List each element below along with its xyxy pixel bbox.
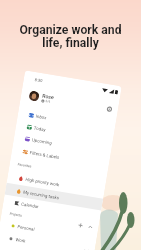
staticText: Favorites — [17, 162, 32, 168]
button[interactable]: High priority work — [7, 170, 105, 198]
button[interactable]: Collapse projects — [86, 222, 95, 232]
button[interactable]: Expand — [82, 246, 91, 250]
staticText: Projects — [9, 212, 23, 218]
staticText: Work — [15, 237, 27, 244]
button[interactable]: Settings — [103, 103, 115, 114]
staticText: Today — [33, 125, 46, 132]
staticText: Rose — [42, 92, 55, 100]
staticText: Calendar — [21, 201, 39, 209]
button[interactable]: Calendar — [3, 195, 101, 222]
staticText: 3/4 — [45, 99, 51, 104]
staticText: Organize work and life, finally — [19, 23, 122, 50]
button[interactable]: Inbox — [17, 107, 116, 135]
button[interactable]: My recurring tasks — [5, 183, 103, 210]
staticText: My recurring tasks — [23, 190, 60, 201]
button[interactable]: Personal — [0, 217, 97, 245]
staticText: Filters & Labels — [29, 150, 60, 160]
button[interactable]: Add project — [76, 221, 85, 230]
button[interactable]: Filters & Labels — [11, 143, 110, 171]
button[interactable]: Rose — [20, 87, 119, 117]
staticText: 8:30 — [34, 77, 43, 83]
button[interactable]: Today — [15, 119, 114, 146]
staticText: High priority work — [25, 177, 60, 187]
staticText: Inbox — [35, 114, 47, 120]
button[interactable]: Upcoming — [13, 130, 112, 158]
button[interactable]: Work — [0, 230, 95, 250]
staticText: Upcoming — [31, 137, 52, 145]
staticText: Personal — [17, 224, 36, 232]
